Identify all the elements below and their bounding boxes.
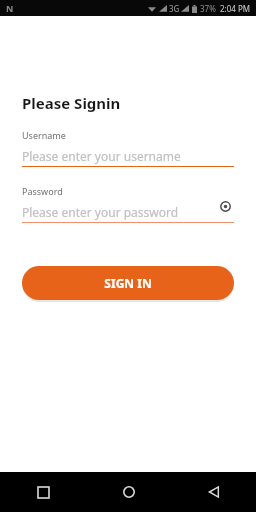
staticText: Username	[22, 129, 66, 141]
button[interactable]: SIGN IN	[22, 266, 234, 300]
staticText: Password	[22, 185, 63, 197]
staticText: Please Signin	[22, 93, 121, 113]
staticText: SIGN IN	[104, 275, 152, 291]
button[interactable]: Please enter your password	[22, 201, 234, 223]
staticText: N	[6, 2, 14, 14]
staticText: Please enter your username	[22, 148, 181, 164]
button[interactable]: Back	[171, 472, 256, 512]
button[interactable]: Please enter your username	[22, 145, 234, 167]
staticText: 2:04 PM	[220, 3, 251, 14]
staticText: 37%	[200, 3, 216, 14]
button[interactable]: Home	[86, 472, 171, 512]
staticText: Please enter your password	[22, 204, 179, 220]
button[interactable]: Recents	[0, 472, 86, 512]
button[interactable]: Show password	[216, 197, 234, 215]
staticText: 3G	[169, 3, 180, 14]
